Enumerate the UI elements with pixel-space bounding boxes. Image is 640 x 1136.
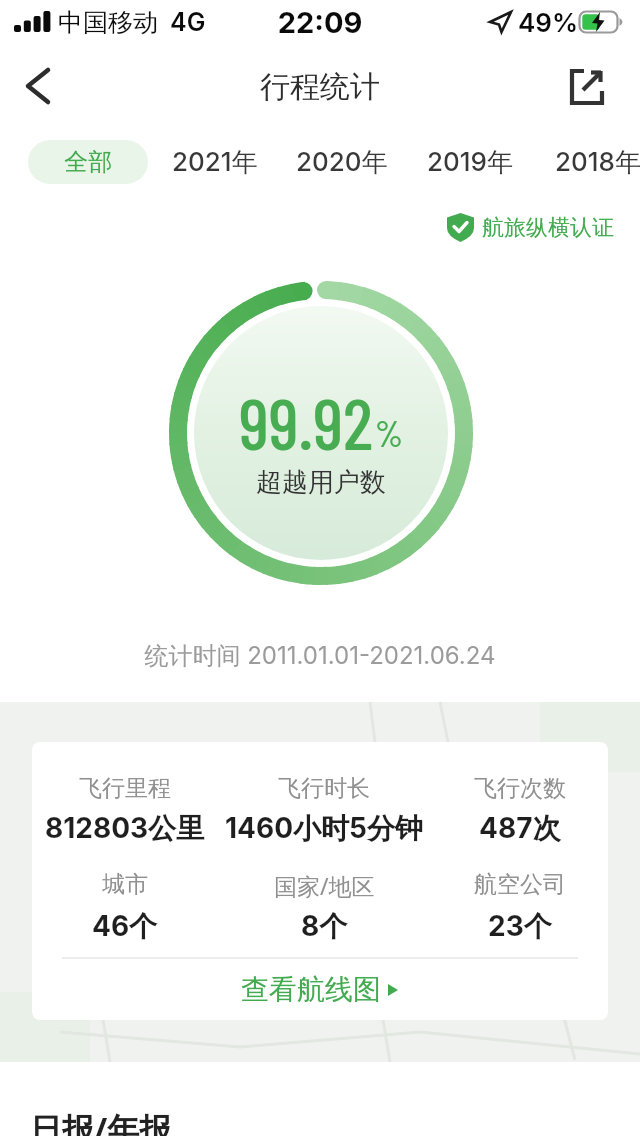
staticText: 487次 — [479, 811, 561, 846]
staticText: 2020年 — [296, 146, 388, 179]
staticText: 飞行次数 — [474, 774, 566, 803]
button[interactable]: 2019年 — [410, 140, 530, 184]
staticText: 统计时间 2011.01.01-2021.06.24 — [0, 641, 640, 671]
staticText: 2021年 — [172, 146, 258, 179]
staticText: 飞行里程 — [79, 774, 171, 803]
button[interactable]: 全部 — [28, 140, 148, 184]
staticText: 49% — [518, 7, 579, 38]
staticText: 1460小时5分钟 — [225, 811, 423, 846]
staticText: 行程统计 — [0, 68, 640, 106]
staticText: 2019年 — [427, 146, 513, 179]
button[interactable] — [14, 62, 62, 110]
staticText: 8个 — [301, 909, 348, 944]
staticText: 日报/年报 — [30, 1107, 172, 1136]
staticText: 23个 — [488, 909, 552, 944]
staticText: 飞行时长 — [278, 774, 370, 803]
staticText: 22:09 — [0, 5, 640, 40]
staticText: 超越用户数 — [256, 466, 386, 499]
staticText: 812803公里 — [45, 811, 205, 846]
button[interactable] — [557, 58, 615, 116]
button[interactable]: 查看航线图 — [229, 964, 411, 1015]
button[interactable]: 2018年 — [538, 140, 640, 184]
staticText: 全部 — [64, 147, 112, 177]
staticText: 2018年 — [555, 146, 640, 179]
staticText: 国家/地区 — [274, 870, 375, 901]
staticText: 航空公司 — [474, 870, 566, 899]
staticText: 航旅纵横认证 — [482, 214, 614, 242]
staticText: 查看航线图 — [241, 972, 381, 1007]
button[interactable]: 2020年 — [282, 140, 402, 184]
staticText: 4G — [170, 7, 206, 37]
staticText: % — [375, 411, 403, 454]
button[interactable]: 2021年 — [155, 140, 275, 184]
staticText: 中国移动 — [58, 7, 158, 38]
button[interactable]: 航旅纵横认证 — [447, 213, 614, 242]
staticText: 城市 — [102, 870, 148, 899]
staticText: 46个 — [92, 909, 158, 944]
staticText: 99.92 — [239, 378, 373, 464]
